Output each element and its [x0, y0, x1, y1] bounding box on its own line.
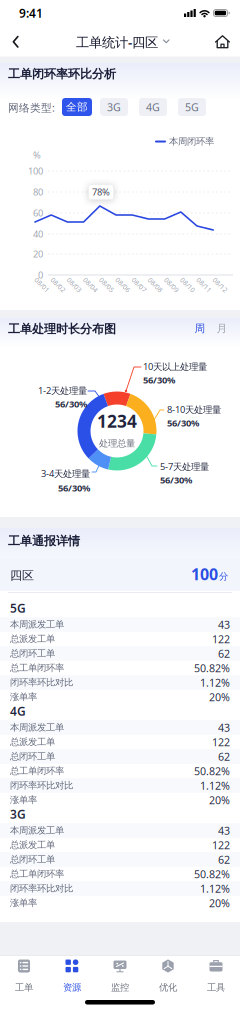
- staticText: 网络类型:: [8, 100, 55, 115]
- staticText: 月: [216, 322, 227, 335]
- staticText: 本周派发工单: [10, 722, 64, 733]
- staticText: 62: [218, 646, 230, 661]
- staticText: 50.82%: [194, 867, 230, 881]
- button[interactable]: 全部: [62, 98, 92, 116]
- staticText: 56/30%: [58, 482, 90, 494]
- staticText: 08/02: [49, 281, 67, 289]
- staticText: 56/30%: [167, 417, 199, 429]
- staticText: 20%: [209, 690, 230, 704]
- staticText: 涨单率: [10, 794, 37, 806]
- staticText: 20%: [209, 896, 230, 910]
- staticText: 总闭环工单: [10, 854, 55, 865]
- staticText: 56/30%: [143, 374, 175, 386]
- staticText: %: [33, 149, 41, 161]
- button[interactable]: 监控: [96, 956, 144, 1004]
- staticText: 总派发工单: [10, 736, 55, 748]
- staticText: 08/05: [98, 281, 116, 289]
- staticText: 分: [219, 571, 228, 582]
- staticText: 工单处理时长分布图: [8, 322, 116, 336]
- staticText: 闭环率环比对比: [10, 780, 73, 791]
- staticText: 122: [212, 838, 230, 852]
- staticText: 43: [218, 720, 230, 735]
- button[interactable]: 工单统计-四区: [62, 33, 182, 50]
- button[interactable]: 优化: [144, 956, 192, 1004]
- staticText: 43: [218, 617, 230, 632]
- staticText: 监控: [111, 982, 129, 993]
- staticText: 0: [38, 269, 43, 281]
- staticText: 8-10天处理量: [167, 403, 221, 416]
- staticText: 08/03: [65, 281, 83, 289]
- staticText: 工具: [207, 982, 225, 993]
- staticText: 62: [218, 852, 230, 867]
- staticText: 78%: [92, 186, 110, 198]
- button[interactable]: 四区: [0, 558, 240, 591]
- staticText: 122: [212, 632, 230, 646]
- button[interactable]: 工单: [0, 956, 48, 1004]
- staticText: 10天以上处理量: [143, 360, 207, 373]
- button[interactable]: 资源: [48, 956, 96, 1004]
- staticText: 总工单闭环率: [10, 868, 64, 880]
- staticText: 08/08: [146, 281, 164, 289]
- staticText: 3G: [10, 806, 26, 822]
- staticText: 资源: [63, 982, 81, 993]
- staticText: 56/30%: [160, 474, 192, 486]
- staticText: 涨单率: [10, 691, 37, 703]
- staticText: 工单: [15, 982, 33, 993]
- staticText: 1.12%: [200, 778, 230, 793]
- staticText: 20: [33, 248, 43, 260]
- staticText: 100: [191, 563, 218, 585]
- staticText: 5G: [10, 600, 26, 616]
- staticText: 80: [33, 186, 43, 198]
- staticText: 本周派发工单: [10, 619, 64, 630]
- staticText: 08/01: [33, 281, 51, 289]
- button[interactable]: Home: [214, 34, 231, 49]
- staticText: 60: [33, 207, 43, 219]
- staticText: 总闭环工单: [10, 751, 55, 762]
- staticText: 1.12%: [200, 881, 230, 896]
- button[interactable]: Back: [10, 33, 24, 51]
- staticText: 56/30%: [55, 398, 87, 410]
- staticText: 9:41: [19, 5, 43, 21]
- staticText: 08/11: [195, 281, 213, 289]
- button[interactable]: 3G: [100, 98, 128, 116]
- staticText: 总派发工单: [10, 633, 55, 645]
- staticText: 100: [28, 165, 43, 177]
- staticText: 3-4天处理量: [41, 467, 90, 480]
- staticText: 5G: [185, 100, 199, 114]
- staticText: 1-2天处理量: [38, 384, 87, 397]
- staticText: 4G: [146, 100, 160, 114]
- staticText: 四区: [10, 568, 34, 583]
- staticText: 08/06: [114, 281, 132, 289]
- staticText: 总工单闭环率: [10, 765, 64, 777]
- button[interactable]: 4G: [139, 98, 167, 116]
- staticText: 总派发工单: [10, 839, 55, 851]
- staticText: 4G: [10, 703, 26, 719]
- staticText: 总工单闭环率: [10, 662, 64, 674]
- staticText: 优化: [159, 982, 177, 993]
- staticText: 总闭环工单: [10, 648, 55, 659]
- staticText: 闭环率环比对比: [10, 677, 73, 688]
- staticText: 50.82%: [194, 764, 230, 778]
- staticText: 处理总量: [99, 438, 135, 449]
- staticText: 3G: [107, 100, 121, 114]
- staticText: 08/12: [211, 281, 229, 289]
- button[interactable]: 工具: [192, 956, 240, 1004]
- staticText: 08/09: [163, 281, 181, 289]
- button[interactable]: 5G: [178, 98, 206, 116]
- staticText: 1234: [97, 409, 137, 432]
- staticText: 43: [218, 823, 230, 838]
- staticText: 本周闭环率: [169, 136, 214, 147]
- staticText: 20%: [209, 793, 230, 807]
- staticText: 08/04: [82, 281, 100, 289]
- staticText: 08/10: [179, 281, 197, 289]
- staticText: 5-7天处理量: [160, 460, 209, 473]
- staticText: 全部: [66, 100, 88, 113]
- staticText: 工单闭环率环比分析: [8, 67, 116, 81]
- staticText: 122: [212, 735, 230, 749]
- staticText: 工单通报详情: [8, 534, 80, 548]
- button[interactable]: 周: [0, 0, 240, 1014]
- staticText: 50.82%: [194, 661, 230, 675]
- staticText: 本周派发工单: [10, 825, 64, 836]
- button[interactable]: 月: [0, 0, 240, 1014]
- staticText: 闭环率环比对比: [10, 883, 73, 894]
